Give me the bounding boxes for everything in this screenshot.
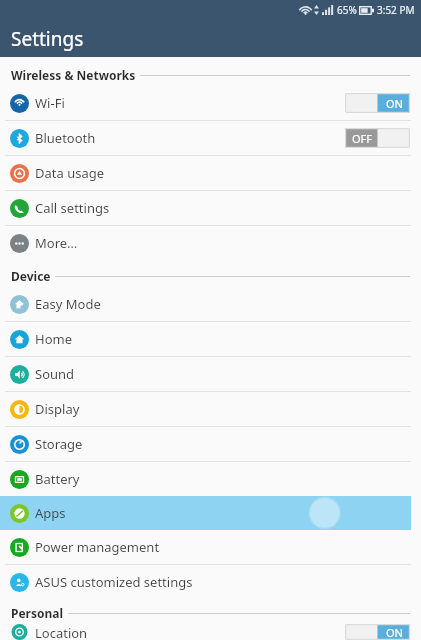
button[interactable]: Easy Mode	[0, 287, 421, 321]
staticText: Display	[35, 400, 80, 418]
staticText: ON	[386, 96, 403, 111]
button[interactable]: Battery	[0, 462, 421, 496]
staticText: ON	[386, 625, 403, 640]
staticText: Location	[35, 624, 88, 640]
staticText: Call settings	[35, 199, 110, 217]
button[interactable]: Settings	[0, 20, 421, 57]
button[interactable]: Apps	[0, 496, 411, 530]
button[interactable]: Switch on	[345, 93, 410, 113]
staticText: OFF	[352, 131, 373, 146]
button[interactable]: Storage	[0, 427, 421, 461]
button[interactable]: Location	[0, 624, 421, 640]
button[interactable]: Display	[0, 392, 421, 426]
button[interactable]: Sound	[0, 357, 421, 391]
staticText: More…	[35, 234, 78, 252]
staticText: Device	[11, 268, 51, 284]
staticText: 3:52 PM	[377, 3, 415, 17]
staticText: Apps	[35, 504, 66, 522]
staticText: Power management	[35, 538, 160, 556]
button[interactable]: Data usage	[0, 156, 421, 190]
button[interactable]: Home	[0, 322, 421, 356]
staticText: Wireless & Networks	[11, 67, 136, 83]
staticText: Bluetooth	[35, 129, 96, 147]
staticText: Easy Mode	[35, 295, 101, 313]
button[interactable]: ASUS customized settings	[0, 565, 421, 599]
staticText: Storage	[35, 435, 83, 453]
button[interactable]: Switch on	[345, 624, 410, 640]
button[interactable]: More…	[0, 226, 421, 260]
staticText: Home	[35, 330, 72, 348]
staticText: Settings	[11, 26, 84, 52]
staticText: Wi-Fi	[35, 94, 65, 112]
staticText: Sound	[35, 365, 75, 383]
staticText: 65%	[337, 3, 357, 17]
button[interactable]: Wi-Fi	[0, 86, 421, 120]
staticText: Battery	[35, 470, 80, 488]
staticText: Personal	[11, 605, 64, 621]
button[interactable]: Call settings	[0, 191, 421, 225]
button[interactable]: Bluetooth	[0, 121, 421, 155]
button[interactable]: Switch off	[345, 128, 410, 148]
staticText: ASUS customized settings	[35, 573, 193, 591]
button[interactable]: Power management	[0, 530, 421, 564]
staticText: Data usage	[35, 164, 105, 182]
